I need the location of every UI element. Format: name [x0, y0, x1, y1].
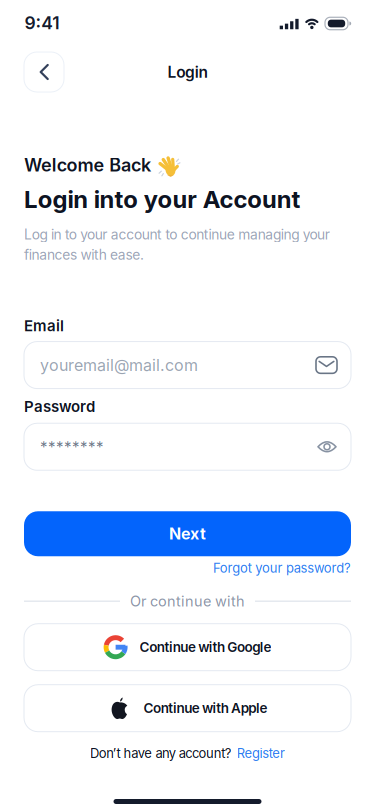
staticText: ******** — [40, 438, 104, 456]
staticText: finances with ease. — [24, 247, 144, 263]
button[interactable]: Next — [24, 511, 351, 556]
button[interactable]: ******** — [24, 423, 351, 470]
staticText: Log in to your account to continue manag… — [24, 226, 330, 243]
staticText: Register — [237, 746, 285, 761]
staticText: Continue with Apple — [143, 700, 268, 716]
button[interactable]: Forgot your password? — [213, 560, 351, 576]
button[interactable]: youremail@mail.com — [24, 342, 351, 389]
staticText: Login — [167, 63, 208, 81]
button[interactable]: Continue with Apple — [24, 685, 351, 732]
staticText: Continue with Google — [140, 639, 271, 655]
button[interactable]: Continue with Google — [24, 624, 351, 671]
button[interactable]: Register — [237, 746, 285, 761]
staticText: Or continue with — [130, 593, 245, 610]
staticText: Next — [169, 524, 206, 543]
staticText: youremail@mail.com — [40, 356, 198, 374]
button[interactable]: Back — [24, 52, 64, 92]
staticText: Password — [24, 398, 95, 415]
staticText: Login into your Account — [24, 185, 301, 213]
staticText: Forgot your password? — [213, 560, 351, 576]
staticText: Welcome Back — [24, 154, 151, 176]
staticText: Don’t have any account? — [90, 746, 232, 761]
staticText: 9:41 — [24, 13, 59, 33]
staticText: Email — [24, 317, 64, 335]
